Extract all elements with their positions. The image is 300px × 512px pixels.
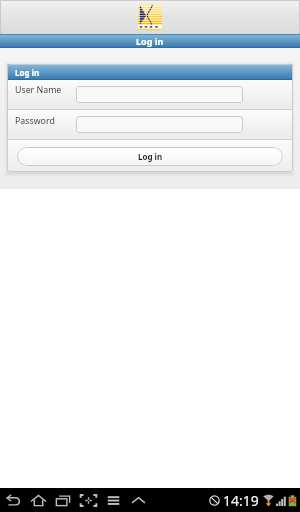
button[interactable] xyxy=(76,116,243,133)
staticText: Log in xyxy=(136,35,164,47)
button[interactable]: Menu xyxy=(101,488,126,512)
button[interactable]: Screenshot xyxy=(76,488,101,512)
staticText: Log in xyxy=(15,67,40,78)
button[interactable]: Log in xyxy=(17,147,283,166)
button[interactable]: Home xyxy=(26,488,51,512)
button[interactable]: Recents xyxy=(51,488,76,512)
staticText: 14:19 xyxy=(223,491,259,510)
button[interactable]: Back xyxy=(1,488,26,512)
button[interactable]: Expand xyxy=(126,488,151,512)
staticText: Log in xyxy=(138,151,163,162)
staticText: Password xyxy=(15,115,55,127)
staticText: User Name xyxy=(15,84,62,96)
button[interactable] xyxy=(76,86,243,103)
